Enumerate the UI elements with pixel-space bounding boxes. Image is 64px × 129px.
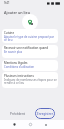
- staticText: 9:41: [4, 1, 10, 5]
- button[interactable]: Enregistrer: [35, 108, 55, 119]
- staticText: Enregistrer: [37, 112, 53, 116]
- staticText: Plusieurs instructions: [4, 74, 34, 78]
- staticText: Recevoir une notification quand: [4, 46, 49, 50]
- staticText: En savoir plus: [4, 50, 23, 54]
- staticText: Mentions légales: [4, 61, 28, 65]
- staticText: Cuisine: [4, 31, 15, 35]
- staticText: Précédent: [10, 112, 26, 116]
- button[interactable]: Home: [26, 120, 35, 129]
- button[interactable]: Plusieurs instructions: [2, 72, 58, 88]
- staticText: Ajoutez le type de cuisine proposé par: [4, 35, 54, 39]
- button[interactable]: Mentions légales: [2, 60, 58, 71]
- button[interactable]: Recents: [41, 120, 50, 129]
- button[interactable]: Recevoir une notification quand: [2, 45, 58, 58]
- staticText: Indiquez de nombreuses étapes pour se: [4, 78, 57, 82]
- staticText: Conditions d'utilisation: [4, 65, 35, 69]
- staticText: rendre à ce lieu: [4, 81, 25, 85]
- button[interactable]: Back: [10, 120, 19, 129]
- staticText: Ajouter un lieu: [4, 10, 31, 15]
- button[interactable]: Cuisine: [2, 29, 58, 43]
- staticText: ce lieu: [4, 38, 13, 42]
- button[interactable]: Lieu: [22, 14, 38, 30]
- button[interactable]: Précédent: [8, 109, 28, 119]
